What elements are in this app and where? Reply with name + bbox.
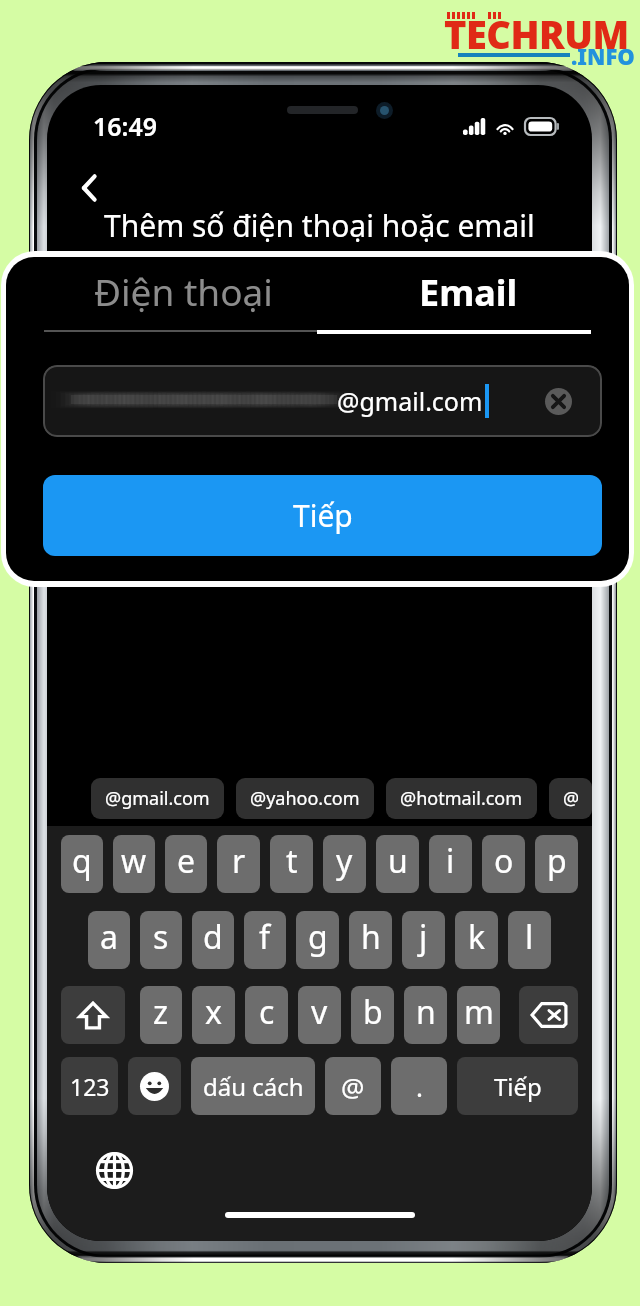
button[interactable]: l	[508, 911, 551, 969]
button[interactable]: @outlook.com	[549, 778, 592, 819]
button[interactable]: b	[351, 986, 394, 1044]
staticText: Thêm số điện thoại hoặc email	[104, 205, 535, 246]
button[interactable]: Change keyboard	[95, 1151, 134, 1190]
button[interactable]: @hotmail.com	[386, 778, 537, 819]
staticText: s	[153, 915, 169, 959]
button[interactable]: q	[61, 835, 103, 893]
staticText: t	[286, 839, 298, 883]
staticText: q	[72, 839, 92, 883]
button[interactable]: dấu cách	[191, 1057, 315, 1115]
staticText: @yahoo.com	[250, 786, 360, 811]
button[interactable]: v	[298, 986, 341, 1044]
staticText: d	[203, 915, 223, 959]
staticText: m	[464, 990, 494, 1034]
button[interactable]: j	[402, 911, 445, 969]
button[interactable]: @gmail.com	[43, 365, 602, 437]
button[interactable]: z	[140, 986, 182, 1044]
button[interactable]: o	[482, 835, 525, 893]
button[interactable]: e	[165, 835, 207, 893]
staticText: dấu cách	[203, 1070, 304, 1103]
staticText: 123	[70, 1071, 110, 1102]
button[interactable]: .	[391, 1057, 447, 1115]
button[interactable]: f	[244, 911, 286, 969]
staticText: z	[153, 990, 169, 1034]
button[interactable]: Back	[63, 162, 115, 214]
button[interactable]: i	[429, 835, 472, 893]
staticText: Tiếp	[494, 1070, 542, 1103]
staticText: y	[336, 839, 353, 883]
staticText: @hotmail.com	[400, 786, 523, 811]
staticText: @gmail.com	[337, 384, 483, 418]
button[interactable]: @	[325, 1057, 381, 1115]
button[interactable]: y	[323, 835, 366, 893]
button[interactable]: Tiếp	[457, 1057, 578, 1115]
staticText: x	[205, 990, 222, 1034]
staticText: i	[446, 839, 455, 883]
button[interactable]: c	[245, 986, 288, 1044]
staticText: r	[232, 839, 246, 883]
button[interactable]: s	[140, 911, 182, 969]
staticText: TECHRUM	[444, 8, 629, 60]
button[interactable]: t	[270, 835, 313, 893]
button[interactable]: @yahoo.com	[236, 778, 374, 819]
staticText: h	[361, 915, 381, 959]
button[interactable]: m	[457, 986, 500, 1044]
button[interactable]: k	[455, 911, 498, 969]
button[interactable]: a	[88, 911, 130, 969]
staticText: .INFO	[571, 41, 635, 71]
button[interactable]: Email	[317, 257, 629, 329]
staticText: v	[311, 990, 328, 1034]
staticText: p	[547, 839, 567, 883]
staticText: @gmail.com	[105, 786, 210, 811]
staticText: k	[468, 915, 486, 959]
button[interactable]: n	[404, 986, 447, 1044]
staticText: 16:49	[93, 109, 158, 143]
button[interactable]: 123	[61, 1057, 118, 1115]
staticText: u	[388, 839, 408, 883]
staticText: .	[416, 1069, 423, 1104]
staticText: @	[341, 1069, 365, 1104]
button[interactable]: @gmail.com	[91, 778, 224, 819]
staticText: Điện thoại	[94, 266, 273, 316]
button[interactable]: Shift	[61, 986, 125, 1044]
staticText: n	[416, 990, 436, 1034]
staticText: j	[419, 915, 428, 959]
staticText: Tiếp	[293, 495, 353, 536]
staticText: a	[100, 915, 118, 959]
button[interactable]: u	[376, 835, 419, 893]
staticText: w	[121, 839, 147, 883]
staticText: @outlook.com	[563, 786, 578, 811]
button[interactable]: p	[535, 835, 578, 893]
button[interactable]: Backspace	[519, 986, 578, 1044]
button[interactable]: d	[192, 911, 234, 969]
staticText: l	[525, 915, 534, 959]
staticText: f	[259, 915, 271, 959]
staticText: e	[177, 839, 196, 883]
button[interactable]: Điện thoại	[6, 257, 317, 329]
button[interactable]: Emoji	[128, 1057, 181, 1115]
staticText: Email	[419, 268, 518, 317]
button[interactable]: x	[192, 986, 235, 1044]
staticText: g	[308, 915, 328, 959]
button[interactable]: g	[296, 911, 339, 969]
button[interactable]: w	[113, 835, 155, 893]
button[interactable]: h	[349, 911, 392, 969]
button[interactable]: r	[217, 835, 260, 893]
staticText: c	[259, 990, 275, 1034]
button[interactable]: Tiếp	[43, 475, 602, 556]
staticText: b	[363, 990, 383, 1034]
staticText: o	[494, 839, 514, 883]
